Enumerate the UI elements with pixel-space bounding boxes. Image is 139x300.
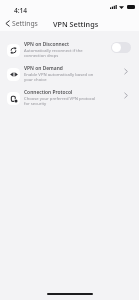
staticText: Settings xyxy=(12,19,38,28)
staticText: for security xyxy=(24,101,47,107)
staticText: Choose your preferred VPN protocol xyxy=(24,96,96,102)
button[interactable]: Toggle VPN on Disconnect xyxy=(111,42,131,53)
staticText: Connection Protocol xyxy=(24,89,73,96)
staticText: your choice xyxy=(24,77,47,83)
button[interactable]: Settings xyxy=(0,17,42,30)
staticText: Enable VPN automatically based on xyxy=(24,72,94,78)
button[interactable]: Connection Protocol xyxy=(0,86,139,110)
staticText: connection drops xyxy=(24,53,59,59)
button[interactable]: VPN on Demand xyxy=(0,62,139,86)
staticText: VPN on Disconnect xyxy=(24,41,70,48)
button[interactable]: VPN on Disconnect xyxy=(0,38,139,62)
staticText: 4:14 xyxy=(14,6,28,15)
staticText: VPN on Demand xyxy=(24,65,63,72)
button[interactable]: Open xyxy=(121,66,131,76)
staticText: VPN Settings xyxy=(53,19,99,29)
button[interactable]: Open xyxy=(121,90,131,100)
staticText: Automatically reconnect if the xyxy=(24,48,83,54)
